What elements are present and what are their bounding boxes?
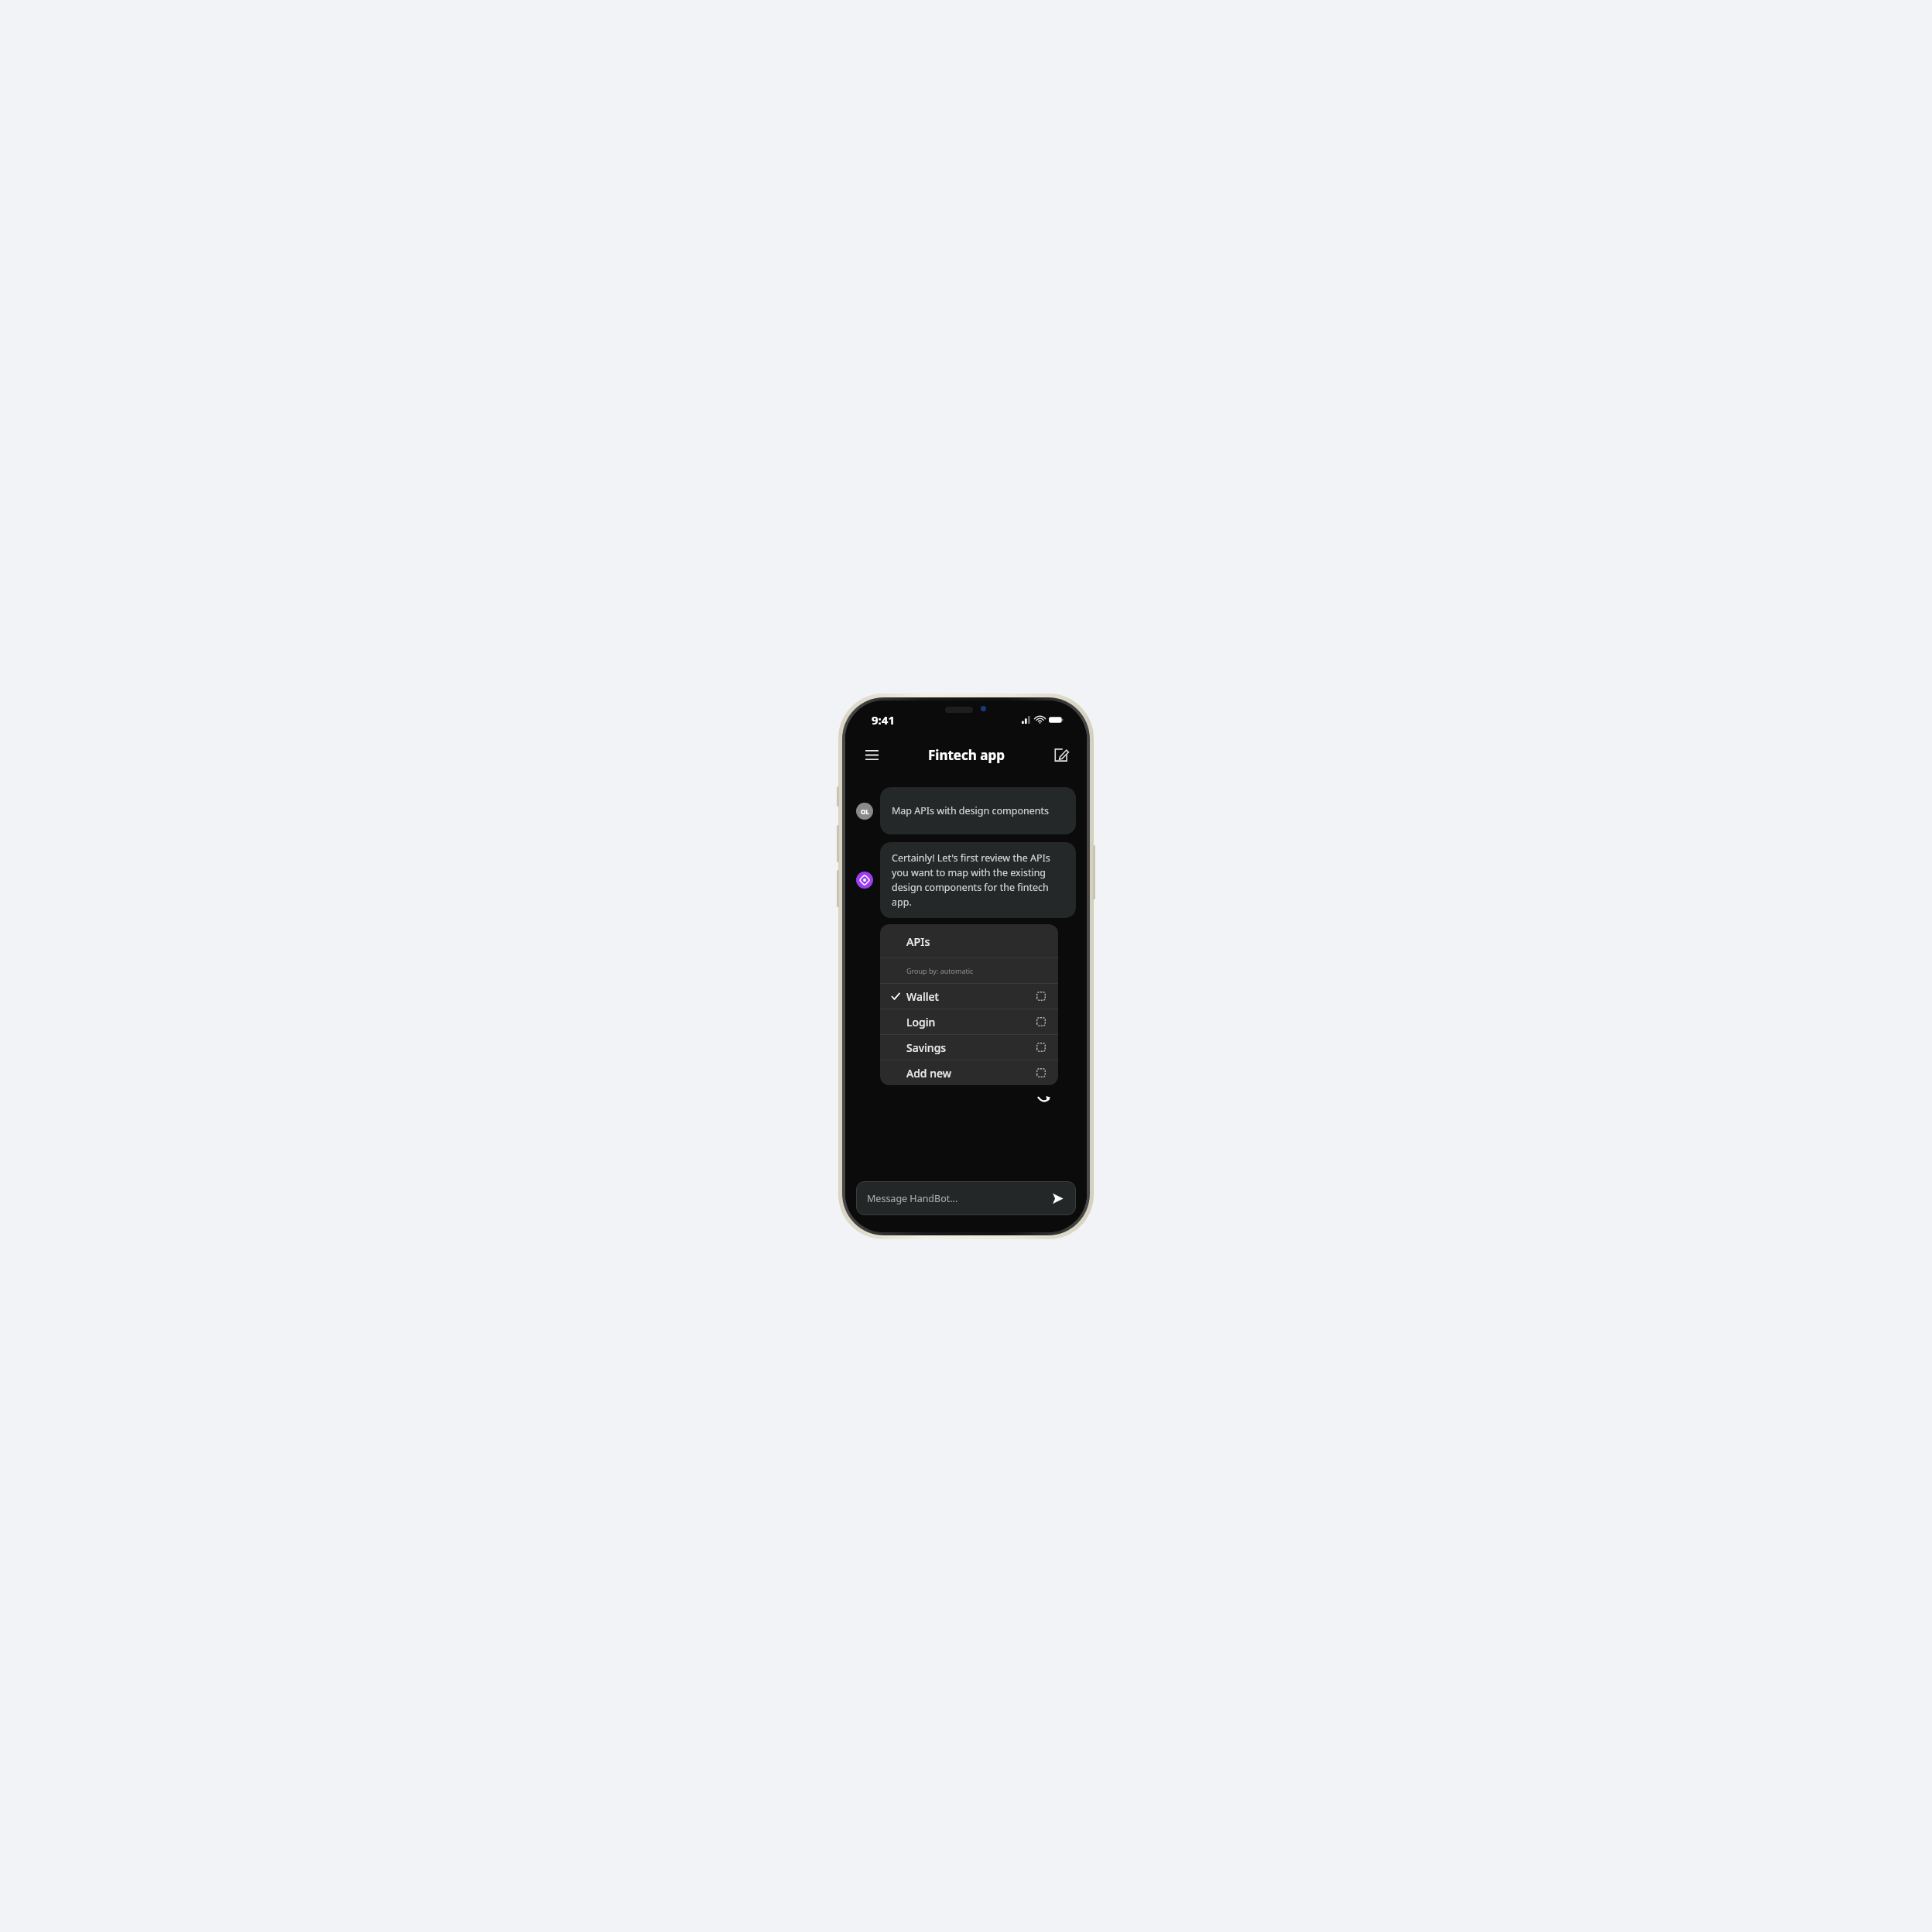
staticText: Login	[906, 1015, 936, 1029]
staticText: Wallet	[906, 989, 939, 1004]
button[interactable]: Compose	[1046, 741, 1074, 769]
staticText: Message HandBot...	[867, 1192, 958, 1205]
button[interactable]: Continue	[1036, 1091, 1053, 1108]
button[interactable]: APIs	[880, 924, 1058, 957]
staticText: Group by: automatic	[906, 966, 974, 975]
staticText: Add new	[906, 1066, 952, 1081]
button[interactable]: Add new	[880, 1060, 1058, 1085]
button[interactable]: Message HandBot...	[856, 1181, 1076, 1215]
button[interactable]: Savings	[880, 1035, 1058, 1060]
staticText: Certainly! Let's first review the APIs y…	[892, 851, 1064, 909]
button[interactable]: Login	[880, 1009, 1058, 1034]
staticText: Map APIs with design components	[892, 804, 1049, 817]
button[interactable]: Send	[1046, 1187, 1068, 1209]
button[interactable]: Menu	[858, 741, 885, 769]
staticText: APIs	[906, 933, 930, 949]
staticText: OL	[861, 807, 869, 816]
button[interactable]: Certainly! Let's first review the APIs y…	[880, 842, 1076, 918]
button[interactable]: Wallet	[880, 984, 1058, 1009]
staticText: Fintech app	[928, 746, 1005, 764]
staticText: Savings	[906, 1040, 947, 1055]
staticText: 9:41	[872, 712, 895, 728]
button[interactable]: Map APIs with design components	[880, 787, 1076, 834]
